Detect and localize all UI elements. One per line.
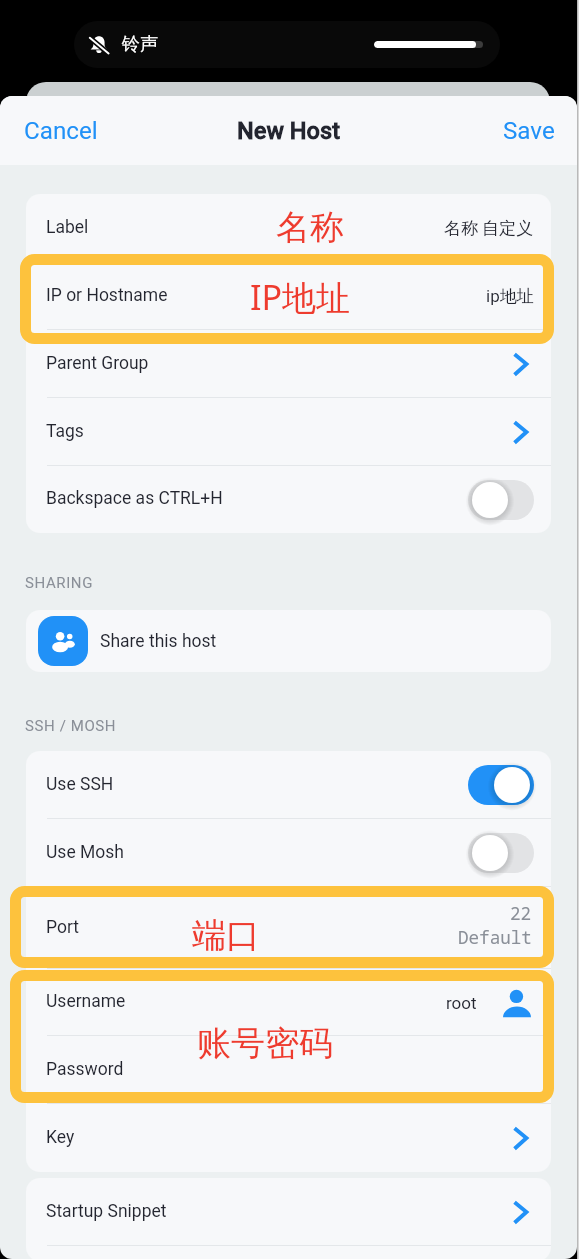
staticText: Label xyxy=(46,217,89,238)
button[interactable]: Password xyxy=(26,1036,551,1104)
button[interactable]: Parent Group xyxy=(26,330,551,398)
button[interactable]: Key xyxy=(26,1104,551,1172)
staticText: IP or Hostname xyxy=(46,285,168,306)
staticText: Backspace as CTRL+H xyxy=(46,488,223,509)
staticText: SSH / MOSH xyxy=(25,717,117,735)
staticText: SHARING xyxy=(25,574,93,592)
button[interactable]: Label xyxy=(26,194,551,262)
button[interactable]: Cancel xyxy=(0,105,122,157)
staticText: Startup Snippet xyxy=(46,1201,167,1222)
staticText: Default xyxy=(458,925,532,949)
other: Tags xyxy=(510,419,534,445)
button[interactable]: IP or Hostname xyxy=(26,262,551,330)
button[interactable]: Use SSH xyxy=(468,762,534,808)
staticText: ip地址 xyxy=(486,286,534,307)
staticText: Use Mosh xyxy=(46,842,124,863)
staticText: Cancel xyxy=(24,117,98,145)
staticText: Port xyxy=(46,917,79,938)
staticText: Save xyxy=(503,117,555,145)
staticText: Username xyxy=(46,991,126,1012)
button[interactable]: Save xyxy=(479,105,577,157)
staticText: IP地址 xyxy=(250,274,351,320)
other: Parent Group xyxy=(510,351,534,377)
staticText: 名称 自定义 xyxy=(444,218,534,239)
staticText: Use SSH xyxy=(46,774,114,795)
staticText: root xyxy=(446,993,477,1013)
button[interactable]: Share this host xyxy=(26,610,551,672)
button[interactable]: Use Mosh xyxy=(468,830,534,876)
button[interactable]: Startup Snippet xyxy=(26,1178,551,1246)
staticText: 22 xyxy=(510,901,532,925)
staticText: Key xyxy=(46,1127,75,1148)
button[interactable]: Use Mosh xyxy=(26,819,551,887)
staticText: 端口 xyxy=(192,914,260,957)
button[interactable]: Backspace as CTRL+H xyxy=(468,477,534,523)
staticText: Parent Group xyxy=(46,353,149,374)
staticText: Password xyxy=(46,1059,124,1080)
other: Startup Snippet xyxy=(510,1199,534,1225)
staticText: Share this host xyxy=(100,631,217,652)
staticText: 账号密码 xyxy=(197,1022,333,1065)
button[interactable]: Use SSH xyxy=(26,751,551,819)
staticText: 铃声 xyxy=(122,33,158,56)
button[interactable]: Port xyxy=(26,887,551,969)
button[interactable]: Backspace as CTRL+H xyxy=(26,466,551,533)
other: Key xyxy=(510,1125,534,1151)
staticText: 名称 xyxy=(276,206,344,249)
button[interactable]: Tags xyxy=(26,398,551,466)
staticText: Tags xyxy=(46,421,84,442)
button[interactable]: Username xyxy=(26,969,551,1036)
staticText: New Host xyxy=(237,117,341,145)
